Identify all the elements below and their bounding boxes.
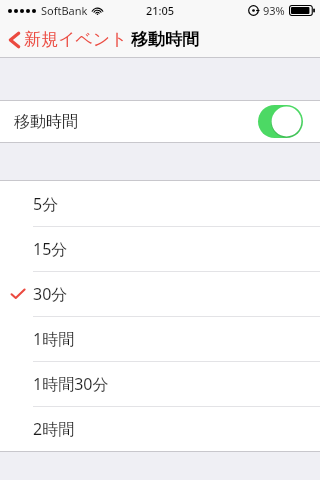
button[interactable]: 30分 [0, 271, 320, 316]
staticText: 新規イベント [24, 29, 128, 50]
staticText: 1時間 [33, 328, 75, 350]
button[interactable]: 新規イベント [0, 25, 134, 54]
staticText: 2時間 [33, 418, 75, 440]
button[interactable]: 1時間30分 [0, 361, 320, 406]
staticText: 30分 [33, 283, 68, 305]
button[interactable]: 移動時間のオン・オフ [258, 105, 303, 138]
button[interactable]: 1時間 [0, 316, 320, 361]
staticText: SoftBank [41, 3, 88, 18]
button[interactable]: 5分 [0, 181, 320, 226]
button[interactable]: 2時間 [0, 406, 320, 451]
staticText: 移動時間 [131, 29, 199, 50]
staticText: 1時間30分 [33, 373, 109, 395]
staticText: 21:05 [146, 3, 175, 18]
staticText: 15分 [33, 238, 68, 260]
staticText: 93% [263, 3, 285, 18]
staticText: 移動時間 [14, 112, 78, 132]
button[interactable]: 15分 [0, 226, 320, 271]
staticText: 5分 [33, 193, 59, 215]
button[interactable]: 移動時間 [0, 100, 320, 143]
